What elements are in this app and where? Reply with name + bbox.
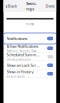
- button[interactable]: Scheduled Summary: [3, 52, 56, 61]
- staticText: Scheduled Summary: [6, 52, 39, 57]
- staticText: Format: [26, 22, 34, 26]
- staticText: Done: [45, 3, 54, 9]
- staticText: Allow Notifications: [6, 44, 38, 49]
- staticText: Settings: [26, 1, 36, 11]
- button[interactable]: Show on Lock Screen: [3, 61, 56, 69]
- button[interactable]: Allow Notifications: [3, 44, 56, 52]
- button[interactable]: ‹: [5, 2, 17, 10]
- button[interactable]: Done: [45, 3, 54, 9]
- staticText: Recent alerts: [6, 75, 24, 78]
- staticText: Back: [8, 3, 17, 9]
- staticText: ‹: [5, 2, 7, 10]
- staticText: Show on Lock Screen: [6, 63, 39, 68]
- button[interactable]: Show in History: [3, 69, 56, 78]
- staticText: Show in History: [6, 69, 33, 74]
- staticText: Banners, Sounds, Badges: [6, 49, 39, 53]
- staticText: Delivery schedule: [6, 58, 31, 61]
- staticText: Notifications: [6, 36, 27, 41]
